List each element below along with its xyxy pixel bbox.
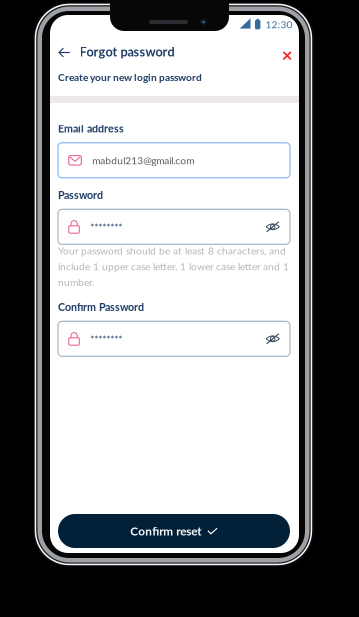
staticText: Forgot password [79,44,174,59]
staticText: Confirm reset [130,524,201,538]
button[interactable]: Confirm reset [58,514,290,548]
button[interactable]: Show password [265,323,290,354]
staticText: ******** [90,333,122,345]
staticText: Your password should be at least 8 chara… [58,244,289,288]
staticText: mabdul213@gmail.com [92,154,194,166]
button[interactable]: Close [276,45,298,66]
button[interactable]: Back [52,41,76,64]
staticText: Confirm Password [58,300,144,313]
staticText: Email address [58,122,124,135]
staticText: 12:30 [265,18,292,30]
staticText: Create your new login password [58,71,202,83]
button[interactable]: Show password [265,211,290,242]
staticText: Password [58,188,103,201]
staticText: ******** [90,221,122,233]
